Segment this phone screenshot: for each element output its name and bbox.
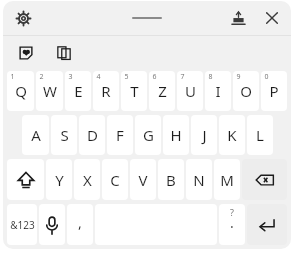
button[interactable]: W (36, 71, 63, 111)
button[interactable]: H (163, 115, 189, 155)
button[interactable]: Voice input (39, 204, 65, 245)
staticText: 8 (208, 72, 213, 82)
staticText: , (78, 213, 82, 232)
staticText: H (170, 125, 182, 145)
staticText: S (60, 125, 69, 145)
staticText: E (74, 81, 83, 101)
staticText: &123 (10, 218, 35, 232)
staticText: J (202, 125, 207, 145)
staticText: R (101, 81, 111, 101)
button[interactable]: E (65, 71, 91, 111)
button[interactable]: M (214, 159, 240, 200)
staticText: I (215, 81, 221, 101)
button[interactable]: B (158, 159, 184, 200)
button[interactable]: Y (46, 159, 72, 200)
button[interactable]: C (102, 159, 128, 200)
button[interactable]: X (74, 159, 100, 200)
staticText: M (220, 170, 234, 190)
staticText: B (166, 170, 176, 190)
staticText: V (138, 170, 148, 190)
button[interactable]: L (247, 115, 273, 155)
staticText: L (256, 125, 264, 145)
button[interactable]: T (121, 71, 147, 111)
staticText: 9 (236, 72, 241, 82)
button[interactable]: Stickers (13, 40, 39, 66)
button[interactable]: J (191, 115, 217, 155)
staticText: 5 (124, 72, 129, 82)
staticText: 0 (264, 72, 269, 82)
staticText: O (240, 81, 252, 101)
staticText: ? (230, 206, 234, 218)
button[interactable]: Z (149, 71, 175, 111)
staticText: N (193, 170, 205, 190)
staticText: G (143, 125, 154, 145)
staticText: P (269, 81, 279, 101)
staticText: A (31, 125, 41, 145)
button[interactable]: Dock keyboard (225, 5, 251, 31)
button[interactable]: N (186, 159, 212, 200)
staticText: 1 (10, 72, 15, 82)
staticText: 7 (180, 72, 185, 82)
button[interactable]: G (135, 115, 161, 155)
staticText: W (43, 81, 57, 101)
button[interactable]: I (205, 71, 231, 111)
staticText: C (110, 170, 120, 190)
staticText: D (87, 125, 98, 145)
staticText: K (227, 125, 237, 145)
staticText: . (230, 213, 234, 232)
button[interactable]: P (261, 71, 287, 111)
staticText: 2 (39, 72, 44, 82)
staticText: Q (15, 81, 27, 101)
button[interactable]: Close (259, 5, 285, 31)
button[interactable]: &123 (7, 204, 37, 245)
button[interactable]: Backspace (242, 159, 287, 200)
staticText: 4 (96, 72, 101, 82)
staticText: F (116, 125, 124, 145)
button[interactable]: V (130, 159, 156, 200)
button[interactable]: Clipboard (51, 40, 77, 66)
staticText: Z (158, 81, 167, 101)
button[interactable]: Enter (247, 204, 287, 245)
staticText: X (83, 170, 92, 190)
button[interactable]: Settings (10, 5, 36, 31)
button[interactable]: S (51, 115, 77, 155)
button[interactable]: F (107, 115, 133, 155)
button[interactable]: K (219, 115, 245, 155)
button[interactable]: A (22, 115, 49, 155)
button[interactable]: R (93, 71, 119, 111)
staticText: Y (55, 170, 64, 190)
staticText: U (185, 81, 196, 101)
button[interactable]: O (233, 71, 259, 111)
button[interactable]: Shift (7, 159, 44, 200)
button[interactable]: Q (7, 71, 34, 111)
staticText: T (130, 81, 139, 101)
button[interactable]: ? (219, 204, 245, 245)
staticText: 6 (152, 72, 157, 82)
button[interactable]: , (67, 204, 93, 245)
staticText: 3 (68, 72, 73, 82)
button[interactable]: U (177, 71, 203, 111)
button[interactable]: D (79, 115, 105, 155)
